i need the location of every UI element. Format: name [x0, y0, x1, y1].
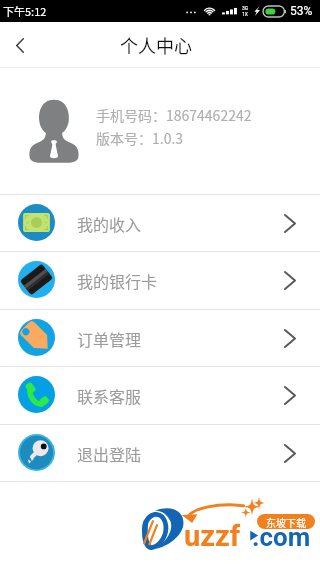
- staticText: 1X: [242, 11, 248, 17]
- staticText: 个人中心: [120, 32, 192, 58]
- button[interactable]: 联系客服: [0, 367, 320, 424]
- staticText: 东坡下载: [266, 515, 306, 529]
- staticText: 联系客服: [77, 384, 142, 407]
- staticText: uzzf: [184, 519, 241, 553]
- button[interactable]: 我的银行卡: [0, 252, 320, 309]
- button[interactable]: 退出登陆: [0, 425, 320, 482]
- staticText: 版本号：1.0.3: [96, 128, 184, 148]
- staticText: .com: [252, 522, 311, 552]
- staticText: 我的银行卡: [77, 269, 158, 292]
- button[interactable]: 我的收入: [0, 195, 320, 252]
- staticText: 我的收入: [77, 212, 142, 235]
- staticText: 下午5:12: [3, 3, 47, 19]
- button[interactable]: 订单管理: [0, 310, 320, 367]
- staticText: 手机号码：18674462242: [96, 105, 252, 125]
- staticText: 53%: [290, 4, 313, 18]
- staticText: 3G: [242, 5, 249, 11]
- staticText: 退出登陆: [77, 442, 142, 465]
- button[interactable]: Back: [0, 22, 40, 67]
- staticText: 订单管理: [77, 327, 142, 350]
